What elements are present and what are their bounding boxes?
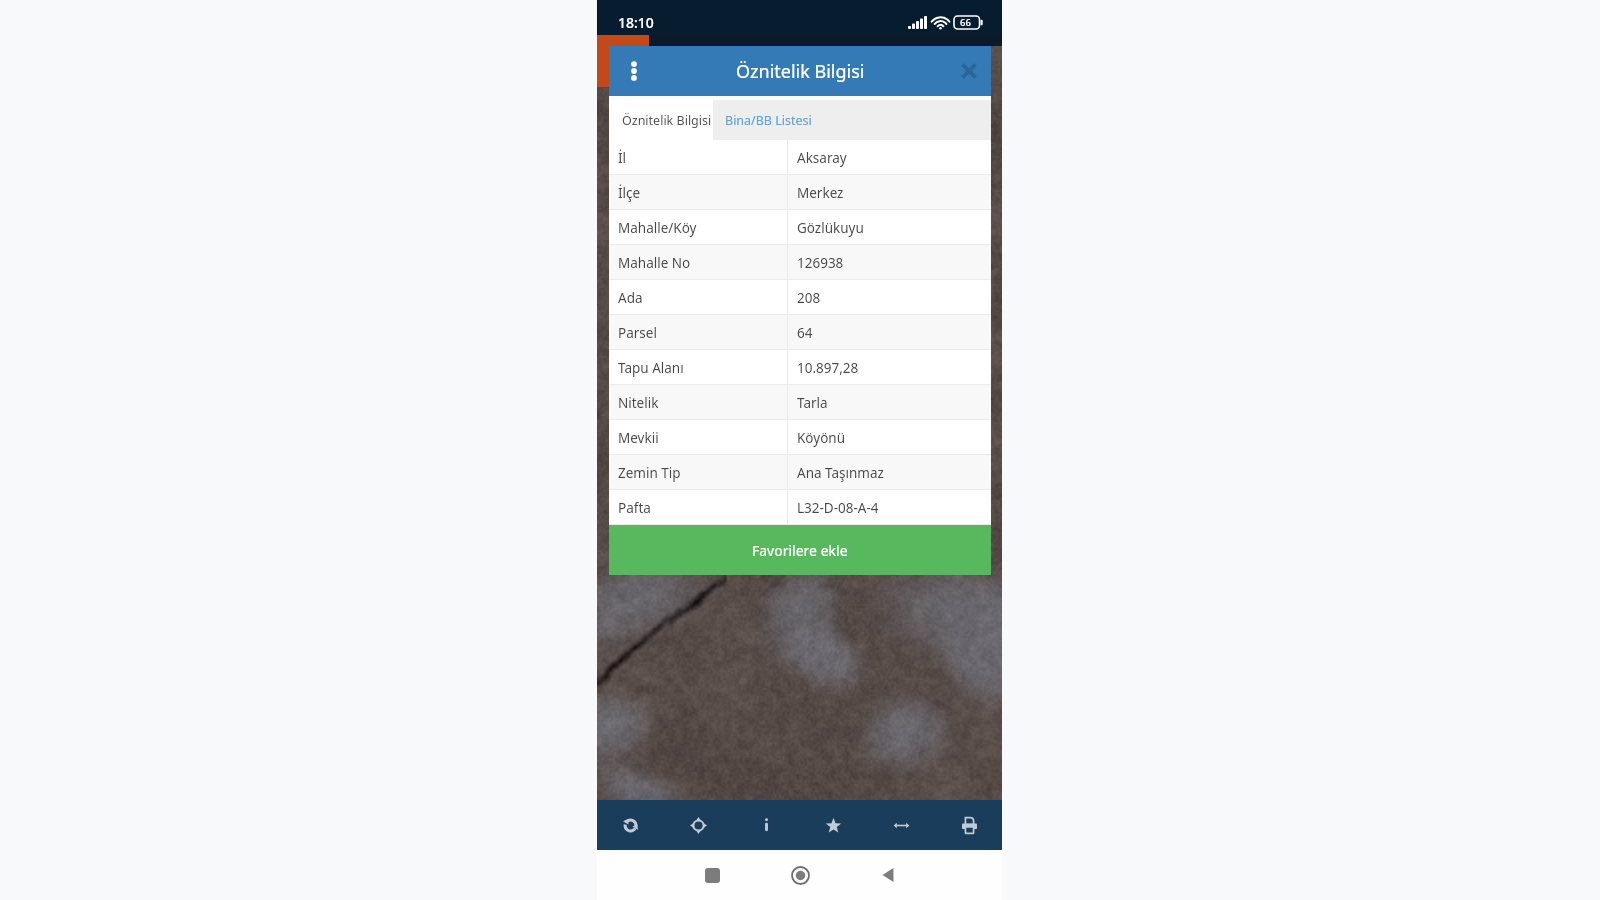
- button[interactable]: Favorilere ekle: [609, 525, 991, 575]
- staticText: 126938: [797, 254, 844, 272]
- staticText: Nitelik: [618, 394, 659, 412]
- button[interactable]: Tapu Alanı: [609, 350, 991, 385]
- staticText: Mahalle No: [618, 254, 691, 272]
- staticText: Zemin Tip: [618, 464, 681, 482]
- button[interactable]: Mahalle/Köy: [609, 210, 991, 245]
- staticText: Merkez: [797, 184, 844, 202]
- staticText: Öznitelik Bilgisi: [736, 59, 865, 84]
- button[interactable]: Measure: [878, 802, 924, 848]
- button[interactable]: Öznitelik Bilgisi: [609, 100, 713, 140]
- button[interactable]: Nitelik: [609, 385, 991, 420]
- staticText: 208: [797, 289, 821, 307]
- button[interactable]: Parsel: [609, 315, 991, 350]
- staticText: 10.897,28: [797, 359, 859, 377]
- button[interactable]: Info: [743, 802, 789, 848]
- button[interactable]: More options: [621, 58, 647, 84]
- button[interactable]: Mevkii: [609, 420, 991, 455]
- button[interactable]: Pafta: [609, 490, 991, 525]
- staticText: Ana Taşınmaz: [797, 464, 884, 482]
- button[interactable]: Locate: [675, 802, 721, 848]
- staticText: 18:10: [618, 13, 654, 32]
- staticText: Aksaray: [797, 149, 847, 167]
- button[interactable]: İl: [609, 140, 991, 175]
- staticText: 66: [960, 16, 971, 29]
- button[interactable]: Recents: [668, 850, 756, 900]
- button[interactable]: İlçe: [609, 175, 991, 210]
- staticText: Tarla: [797, 394, 828, 412]
- staticText: Ada: [618, 289, 643, 307]
- button[interactable]: Home: [756, 850, 844, 900]
- staticText: Tapu Alanı: [618, 359, 684, 377]
- button[interactable]: Close: [956, 58, 982, 84]
- staticText: L32-D-08-A-4: [797, 499, 879, 517]
- button[interactable]: Bina/BB Listesi: [713, 100, 823, 140]
- staticText: Öznitelik Bilgisi: [622, 112, 712, 129]
- staticText: Favorilere ekle: [752, 541, 848, 560]
- button[interactable]: Print: [946, 802, 992, 848]
- staticText: Mahalle/Köy: [618, 219, 697, 237]
- button[interactable]: Refresh: [607, 802, 653, 848]
- button[interactable]: Mahalle No: [609, 245, 991, 280]
- button[interactable]: Favorites: [810, 802, 856, 848]
- button[interactable]: Back: [844, 850, 932, 900]
- staticText: Bina/BB Listesi: [725, 112, 812, 129]
- staticText: Parsel: [618, 324, 657, 342]
- staticText: Pafta: [618, 499, 651, 517]
- button[interactable]: Zemin Tip: [609, 455, 991, 490]
- staticText: 64: [797, 324, 813, 342]
- staticText: Mevkii: [618, 429, 659, 447]
- button[interactable]: Ada: [609, 280, 991, 315]
- staticText: Köyönü: [797, 429, 845, 447]
- staticText: Gözlükuyu: [797, 219, 864, 237]
- staticText: İl: [618, 149, 627, 167]
- staticText: İlçe: [618, 184, 641, 202]
